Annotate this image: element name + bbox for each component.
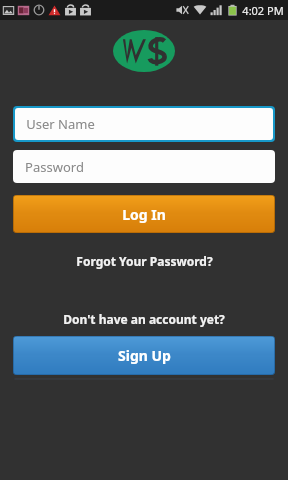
button[interactable]: Sign Up xyxy=(13,336,275,375)
staticText: Forgot Your Password? xyxy=(76,253,213,269)
button[interactable]: Password xyxy=(13,150,275,183)
other: App logo xyxy=(113,30,175,72)
staticText: Don't have an account yet? xyxy=(63,311,225,327)
button[interactable]: Log In xyxy=(13,195,275,233)
staticText: Log In xyxy=(122,205,166,224)
staticText: Sign Up xyxy=(118,346,171,365)
staticText: Password xyxy=(25,158,84,176)
staticText: 4:02 PM xyxy=(242,3,284,18)
button[interactable]: Forgot Your Password? xyxy=(0,253,288,269)
staticText: User Name xyxy=(26,115,95,133)
button[interactable]: User Name xyxy=(15,108,273,140)
